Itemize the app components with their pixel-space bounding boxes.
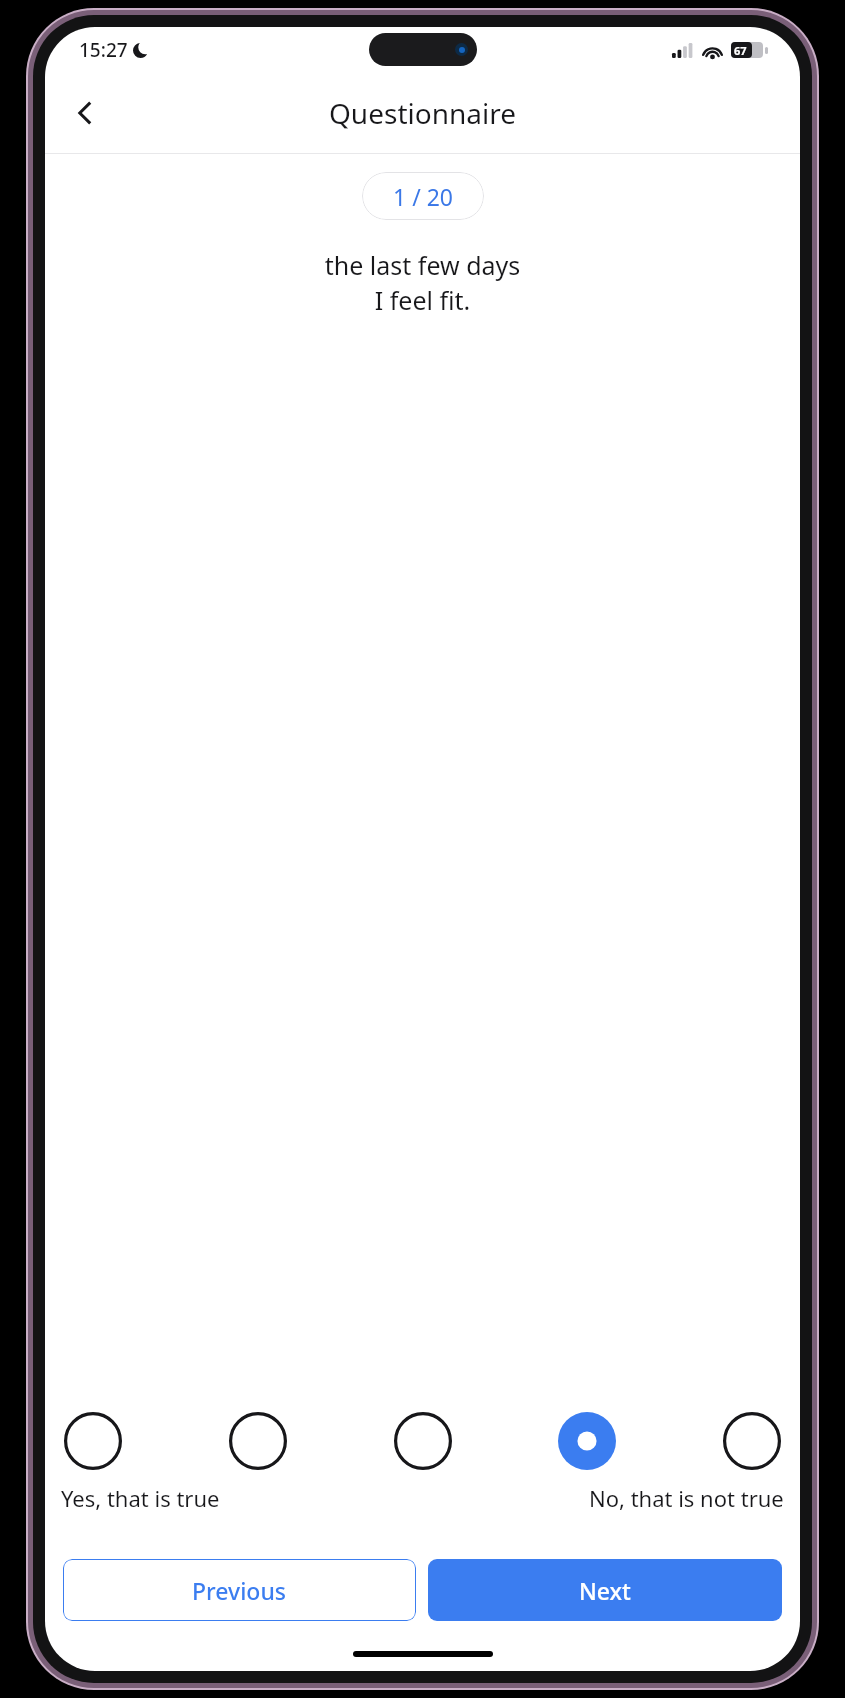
staticText: No, that is not true (589, 1483, 784, 1513)
staticText: Yes, that is true (61, 1483, 220, 1513)
staticText: 15:27 (79, 37, 128, 63)
button[interactable]: Option 2 (226, 1409, 290, 1473)
button[interactable]: Previous (63, 1559, 416, 1621)
button[interactable]: Option 5 (720, 1409, 784, 1473)
staticText: the last few days I feel fit. (73, 248, 772, 318)
button[interactable]: 1 / 20 (362, 172, 484, 220)
button[interactable]: Option 3 (391, 1409, 455, 1473)
staticText: Next (579, 1575, 631, 1606)
staticText: 1 / 20 (393, 181, 453, 212)
button[interactable]: Option 4 (555, 1409, 619, 1473)
staticText: Questionnaire (329, 94, 516, 132)
button[interactable]: Back (57, 85, 113, 141)
button[interactable]: Next (428, 1559, 782, 1621)
button[interactable]: Option 1 (61, 1409, 125, 1473)
staticText: Previous (192, 1575, 287, 1606)
staticText: 67 (734, 43, 747, 58)
